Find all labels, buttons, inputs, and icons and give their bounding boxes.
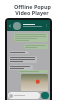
staticText: Video Player xyxy=(15,9,49,16)
button[interactable]: Send xyxy=(41,92,49,99)
button[interactable] xyxy=(7,20,50,31)
staticText: Offline Popup xyxy=(14,3,51,10)
button[interactable] xyxy=(8,92,40,99)
